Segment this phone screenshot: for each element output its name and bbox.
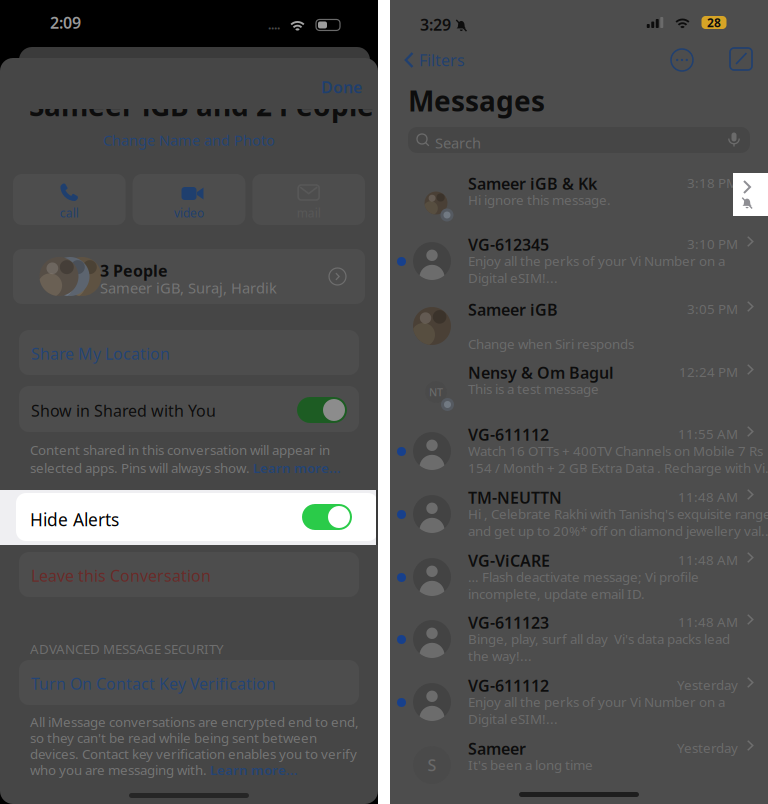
staticText: Enjoy all the perks of your Vi Number on… [468,252,725,270]
staticText: TM-NEUTTN [468,487,562,508]
staticText: Nensy & Om Bagul [468,362,614,383]
staticText: who you are messaging with. [30,761,207,779]
staticText: Sameer iGB, Suraj, Hardik [100,278,277,297]
staticText: Sameer [468,738,526,759]
staticText: Digital eSIM!... [468,710,558,728]
staticText: 3:29 [420,14,451,35]
staticText: 28 [707,14,721,30]
staticText: Change when Siri responds [468,335,634,353]
staticText: Digital eSIM!... [468,269,558,287]
staticText: VG-ViCARE [468,550,550,571]
staticText: the way!... [468,647,532,665]
staticText: Learn more... [253,459,341,477]
staticText: Yesterday [677,676,738,694]
button[interactable]: Show in Shared with You [297,397,347,423]
button[interactable]: Share My Location [19,330,359,375]
staticText: 11:48 AM [678,488,738,506]
staticText: 3 People [100,260,168,281]
button[interactable]: TM-NEUTTN [390,487,768,542]
staticText: 3:18 PM [687,174,738,192]
button[interactable]: video [133,174,245,225]
staticText: … Flash deactivate message; Vi profile [468,568,699,586]
staticText: Filters [419,49,465,71]
staticText: 3:10 PM [687,235,738,253]
staticText: selected apps. Pins will always show. [30,459,250,477]
button[interactable]: NT [390,362,768,417]
staticText: Hi ignore this message. [468,191,611,209]
staticText: Messages [408,82,545,119]
button[interactable]: call [13,174,126,225]
staticText: mail [297,205,321,221]
button[interactable]: S [390,738,768,793]
staticText: incomplete, update email ID. [468,585,645,603]
button[interactable]: Leave this Conversation [19,552,359,597]
staticText: devices. Contact key verification enable… [30,745,357,763]
staticText: 11:48 AM [678,613,738,631]
staticText: Enjoy all the perks of your Vi Number on… [468,693,725,711]
button[interactable]: VG-ViCARE [390,550,768,605]
button[interactable]: VG-611112 [390,424,768,479]
staticText: Yesterday [677,739,738,757]
staticText: All iMessage conversations are encrypted… [30,713,359,731]
staticText: It's been a long time [468,756,593,774]
staticText: Done [321,76,362,98]
staticText: 2:09 [50,12,81,33]
staticText: Turn On Contact Key Verification [31,673,276,694]
staticText: Watch 16 OTTs + 400TV Channels on Mobile… [468,442,763,460]
staticText: Sameer iGB [468,299,558,320]
button[interactable]: Sameer iGB & Kk [390,173,768,228]
staticText: Sameer iGB & Kk [468,173,597,194]
button[interactable]: VG-611112 [390,675,768,730]
staticText: Search [435,133,481,152]
button[interactable]: VG-612345 [390,234,768,289]
staticText: .... [268,17,280,33]
button[interactable]: Sameer iGB [390,299,768,354]
button[interactable]: Filters [404,47,465,73]
button[interactable]: Compose [730,48,752,70]
staticText: Leave this Conversation [31,565,211,586]
staticText: Hide Alerts [30,508,119,531]
staticText: 11:48 AM [678,551,738,569]
button[interactable]: 3 People [13,249,365,304]
staticText: Hi , Celebrate Rakhi with Tanishq's exqu… [468,505,768,523]
staticText: video [174,205,204,221]
staticText: ADVANCED MESSAGE SECURITY [30,640,224,658]
button[interactable]: More [670,48,694,72]
staticText: so they can't be read while being sent b… [30,729,317,747]
staticText: Content shared in this conversation will… [30,441,330,459]
button[interactable]: VG-611123 [390,612,768,667]
staticText: and get up to 20%* off on diamond jewell… [468,522,768,540]
staticText: Learn more... [210,761,298,779]
staticText: NT [429,385,443,399]
staticText: 12:24 PM [679,363,738,381]
staticText: call [60,205,79,221]
staticText: Share My Location [31,343,170,364]
staticText: VG-612345 [468,234,549,255]
staticText: 154 / Month + 2 GB Extra Data . Recharge… [468,459,768,477]
staticText: Change Name and Photo [103,130,275,150]
button[interactable]: Change Name and Photo [0,131,378,149]
button[interactable]: Done [290,77,362,97]
staticText: Binge, play, surf all day Vi's data pack… [468,630,730,648]
button[interactable]: Hide Alerts [16,493,378,541]
staticText: VG-611123 [468,612,549,633]
staticText: 11:55 AM [678,425,738,443]
staticText: VG-611112 [468,424,549,445]
button[interactable]: Turn On Contact Key Verification [19,660,359,705]
staticText: Show in Shared with You [31,400,216,421]
staticText: VG-611112 [468,675,549,696]
staticText: Sameer iGB and 2 People [29,87,374,124]
staticText: This is a test message [468,380,599,398]
staticText: 3:05 PM [687,300,738,318]
staticText: S [427,754,436,776]
